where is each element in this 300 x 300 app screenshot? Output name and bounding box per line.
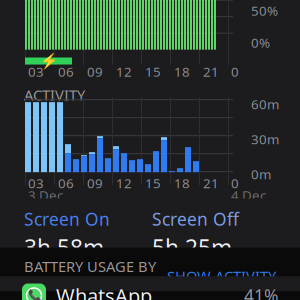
staticText: 30m [251,130,279,148]
staticText: 50% [251,2,278,19]
staticText: 0m [251,165,271,183]
staticText: 06 [58,174,74,192]
staticText: Screen On [24,207,110,230]
staticText: 18 [174,174,190,192]
staticText: 21 [203,174,219,192]
staticText: 09 [87,63,103,80]
staticText: 12 [116,63,132,80]
staticText: 09 [87,174,103,192]
button[interactable]: 📞 [0,276,300,300]
staticText: WhatsApp [56,282,152,300]
staticText: 5h 25m [152,232,232,263]
staticText: 18 [174,63,190,80]
staticText: SHOW ACTIVITY [167,266,276,286]
staticText: 60m [251,95,279,113]
staticText: 0 [231,174,239,192]
staticText: BATTERY USAGE BY APP [24,256,156,295]
staticText: 0% [251,34,270,51]
staticText: 12 [116,174,132,192]
staticText: Screen Off [152,207,239,230]
staticText: 0 [231,63,239,80]
button[interactable]: SHOW ACTIVITY [167,266,276,286]
staticText: 📞 [27,289,40,300]
staticText: 03 [28,174,44,192]
staticText: 06 [58,63,74,80]
staticText: 3h 58m [24,232,104,263]
staticText: 4 Dec [231,186,266,204]
staticText: 15 [145,174,161,192]
staticText: ACTIVITY [24,85,85,105]
staticText: 41% [244,284,278,300]
staticText: 15 [145,63,161,80]
staticText: ⚡ [39,53,57,69]
staticText: 21 [203,63,219,80]
staticText: 03 [28,63,44,80]
staticText: 3 Dec [28,186,63,204]
